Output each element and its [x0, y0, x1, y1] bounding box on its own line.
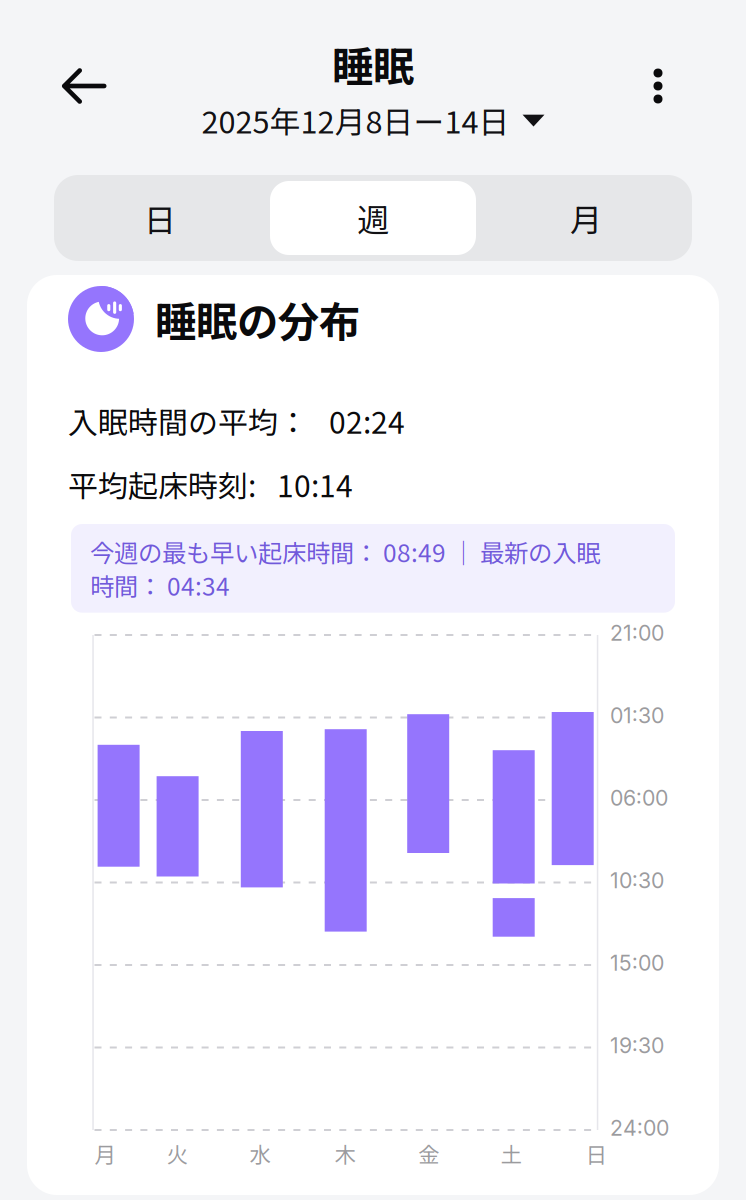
staticText: 睡眠	[332, 34, 414, 94]
button[interactable]: Back	[37, 45, 131, 127]
staticText: 日	[585, 1138, 606, 1169]
button[interactable]: More options	[618, 45, 698, 127]
button[interactable]: 月	[480, 175, 692, 261]
staticText: 入眠時間の平均： 02:24	[68, 399, 405, 442]
staticText: 火	[166, 1138, 187, 1169]
staticText: 06:00	[610, 785, 668, 811]
staticText: 日	[144, 195, 176, 241]
staticText: 睡眠の分布	[155, 289, 360, 349]
staticText: 10:30	[610, 867, 664, 893]
staticText: 今週の最も早い起床時間： 08:49 ｜ 最新の入眠 時間： 04:34	[90, 534, 600, 603]
staticText: 19:30	[610, 1032, 664, 1058]
staticText: 15:00	[610, 950, 664, 976]
staticText: 木	[334, 1138, 355, 1169]
staticText: 01:30	[610, 702, 664, 728]
staticText: 水	[249, 1138, 270, 1169]
button[interactable]: 週	[266, 175, 480, 261]
button[interactable]: 日	[54, 175, 266, 261]
staticText: 週	[357, 195, 389, 241]
staticText: 平均起床時刻: 10:14	[68, 462, 353, 506]
staticText: 月	[570, 195, 602, 241]
staticText: 土	[500, 1138, 521, 1169]
staticText: 2025年12月8日ー14日	[201, 98, 509, 142]
staticText: 21:00	[610, 620, 664, 646]
staticText: 金	[418, 1138, 439, 1169]
staticText: 月	[94, 1138, 115, 1169]
staticText: 24:00	[610, 1115, 669, 1141]
